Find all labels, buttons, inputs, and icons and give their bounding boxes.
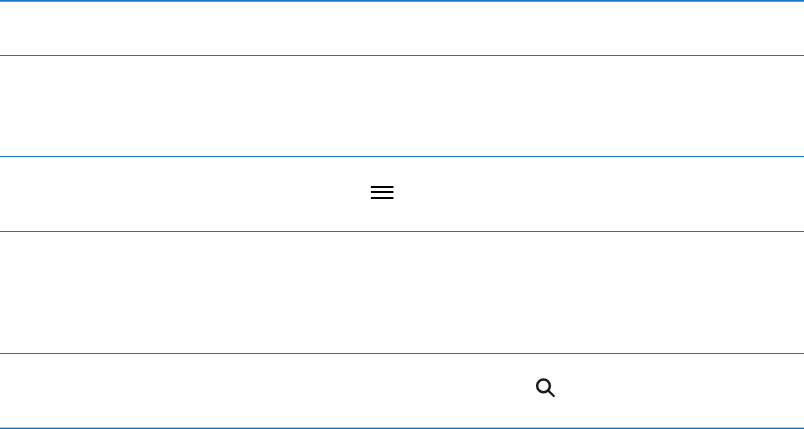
button[interactable]: Search — [532, 374, 560, 402]
button[interactable]: Menu — [364, 178, 400, 206]
